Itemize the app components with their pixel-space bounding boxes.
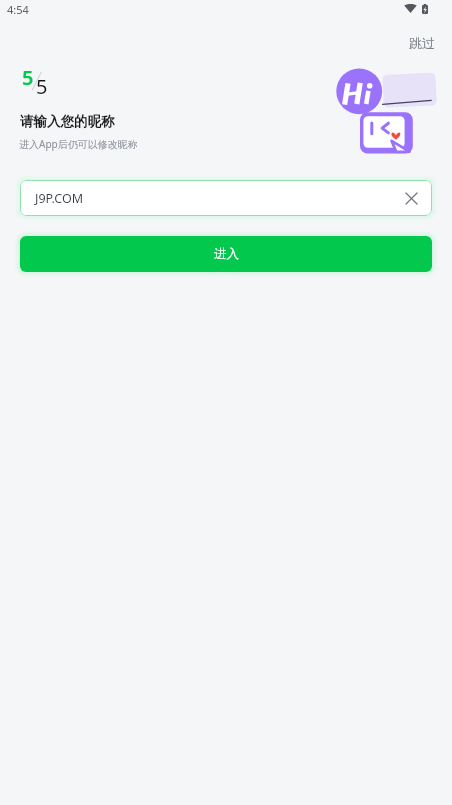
- staticText: 5: [22, 64, 34, 91]
- button[interactable]: J9P.COM: [20, 180, 432, 216]
- button[interactable]: 跳过: [401, 32, 443, 54]
- staticText: 跳过: [409, 35, 435, 51]
- staticText: 请输入您的昵称: [20, 113, 115, 130]
- staticText: 5: [36, 73, 48, 100]
- staticText: 进入App后仍可以修改昵称: [19, 137, 138, 151]
- button[interactable]: Clear text: [399, 186, 423, 210]
- staticText: 4:54: [7, 2, 29, 17]
- button[interactable]: 进入: [20, 236, 432, 272]
- staticText: 进入: [214, 246, 239, 262]
- staticText: J9P.COM: [35, 190, 83, 207]
